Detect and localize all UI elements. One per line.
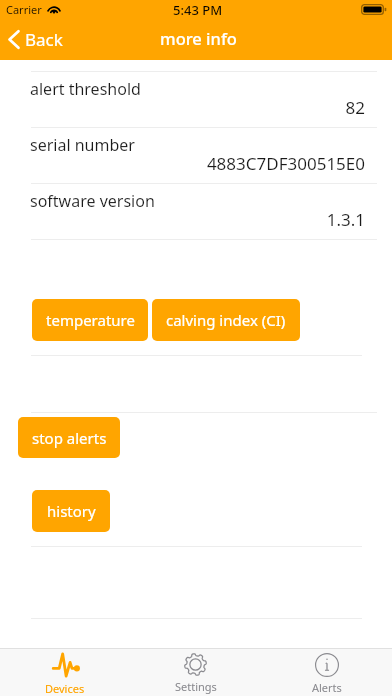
staticText: Alerts xyxy=(312,680,342,695)
staticText: calving index (CI) xyxy=(166,310,286,330)
staticText: Back xyxy=(25,28,63,51)
button[interactable]: Alerts xyxy=(261,649,392,696)
button[interactable]: history xyxy=(32,490,110,532)
staticText: 1.3.1 xyxy=(0,208,365,231)
staticText: 82 xyxy=(0,96,365,119)
button[interactable]: alert threshold xyxy=(0,71,392,127)
staticText: alert threshold xyxy=(30,78,141,100)
button[interactable]: Back xyxy=(7,27,63,51)
button[interactable]: temperature xyxy=(32,299,148,341)
staticText: temperature xyxy=(46,310,135,330)
staticText: stop alerts xyxy=(32,428,107,448)
staticText: Devices xyxy=(45,681,85,696)
button[interactable]: software version xyxy=(0,183,392,239)
staticText: Settings xyxy=(175,679,217,694)
button[interactable]: Devices xyxy=(0,649,130,696)
staticText: serial number xyxy=(30,134,135,156)
button[interactable]: Settings xyxy=(130,649,261,696)
staticText: 5:43 PM xyxy=(173,1,223,19)
button[interactable]: calving index (CI) xyxy=(152,299,300,341)
staticText: Carrier xyxy=(6,2,42,17)
staticText: 4883C7DF300515E0 xyxy=(0,152,365,175)
staticText: history xyxy=(47,501,96,521)
button[interactable]: serial number xyxy=(0,127,392,183)
button[interactable]: stop alerts xyxy=(18,417,120,458)
staticText: software version xyxy=(30,190,155,212)
staticText: more info xyxy=(160,27,237,49)
